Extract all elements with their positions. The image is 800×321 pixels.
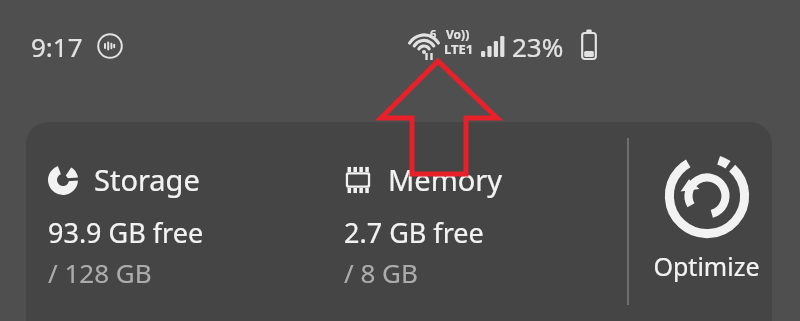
staticText: / 8 GB [344, 255, 418, 290]
other: Optimize [664, 153, 750, 239]
staticText: LTE1 [444, 40, 474, 58]
staticText: Vo)) [446, 26, 470, 42]
button[interactable]: Optimize [641, 122, 772, 321]
other: Battery 23 percent [578, 29, 600, 61]
other: Sound mode [97, 33, 123, 59]
staticText: 93.9 GB free [48, 214, 204, 251]
staticText: / 128 GB [48, 255, 152, 290]
button[interactable]: Storage [26, 122, 326, 321]
staticText: Storage [94, 160, 200, 199]
staticText: 2.7 GB free [344, 214, 484, 251]
staticText: Memory [388, 160, 503, 199]
staticText: 23% [512, 29, 564, 64]
staticText: Optimize [653, 249, 760, 283]
button[interactable]: Memory [326, 122, 626, 321]
staticText: 6 [430, 26, 437, 41]
staticText: 9:17 [31, 29, 83, 64]
